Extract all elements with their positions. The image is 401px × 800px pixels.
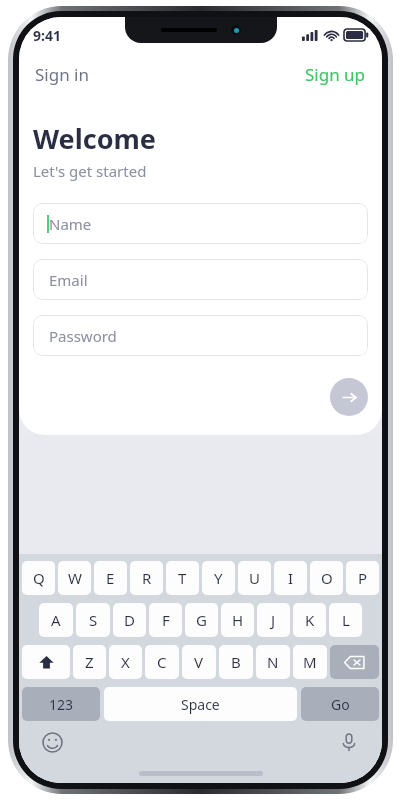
button[interactable]: P <box>346 561 379 595</box>
button[interactable]: F <box>149 603 182 637</box>
staticText: Sign up <box>305 63 366 86</box>
button[interactable]: L <box>329 603 362 637</box>
staticText: V <box>194 652 204 672</box>
button[interactable]: V <box>182 645 216 679</box>
staticText: F <box>162 610 170 630</box>
button[interactable]: S <box>76 603 110 637</box>
button[interactable]: Go <box>301 687 379 721</box>
staticText: Email <box>49 270 88 290</box>
button[interactable]: 123 <box>22 687 100 721</box>
button[interactable]: Password <box>33 315 368 356</box>
staticText: N <box>267 652 279 672</box>
staticText: Let's get started <box>33 161 147 181</box>
staticText: Y <box>214 568 223 588</box>
staticText: C <box>157 652 167 672</box>
button[interactable]: R <box>130 561 163 595</box>
staticText: G <box>196 610 207 630</box>
button[interactable]: M <box>293 645 327 679</box>
staticText: X <box>121 652 130 672</box>
staticText: 9:41 <box>33 26 61 45</box>
button[interactable]: Backspace <box>330 645 379 679</box>
staticText: J <box>271 610 276 630</box>
staticText: Name <box>49 214 92 234</box>
button[interactable]: B <box>219 645 253 679</box>
staticText: S <box>89 610 98 630</box>
staticText: Space <box>181 695 220 714</box>
staticText: Password <box>49 326 117 346</box>
button[interactable]: Continue <box>330 378 368 416</box>
staticText: Q <box>33 568 45 588</box>
staticText: Go <box>331 695 350 714</box>
staticText: Z <box>85 652 94 672</box>
staticText: 123 <box>49 695 74 714</box>
staticText: L <box>342 610 350 630</box>
button[interactable]: K <box>293 603 326 637</box>
button[interactable]: Sign in <box>33 57 91 92</box>
button[interactable]: D <box>113 603 146 637</box>
button[interactable]: I <box>274 561 307 595</box>
button[interactable]: Sign up <box>303 57 368 92</box>
button[interactable]: G <box>185 603 218 637</box>
staticText: W <box>68 568 82 588</box>
staticText: Welcome <box>33 120 156 157</box>
staticText: H <box>232 610 244 630</box>
button[interactable]: Z <box>73 645 106 679</box>
button[interactable]: E <box>94 561 127 595</box>
staticText: B <box>231 652 241 672</box>
button[interactable]: X <box>109 645 142 679</box>
button[interactable]: Q <box>22 561 55 595</box>
staticText: R <box>142 568 152 588</box>
button[interactable]: N <box>256 645 290 679</box>
staticText: O <box>321 568 333 588</box>
button[interactable]: U <box>238 561 271 595</box>
button[interactable]: Y <box>202 561 235 595</box>
button[interactable]: W <box>58 561 91 595</box>
staticText: U <box>249 568 260 588</box>
button[interactable]: Voice input <box>334 727 364 757</box>
button[interactable]: Space <box>104 687 297 721</box>
staticText: A <box>51 610 61 630</box>
staticText: I <box>288 568 294 588</box>
staticText: D <box>124 610 135 630</box>
staticText: Sign in <box>35 63 89 86</box>
button[interactable]: J <box>257 603 290 637</box>
button[interactable]: A <box>39 603 73 637</box>
staticText: E <box>106 568 115 588</box>
button[interactable]: Email <box>33 259 368 300</box>
button[interactable]: Name <box>33 203 368 244</box>
staticText: T <box>178 568 187 588</box>
button[interactable]: O <box>310 561 343 595</box>
button[interactable]: H <box>221 603 254 637</box>
staticText: M <box>303 652 317 672</box>
button[interactable]: T <box>166 561 199 595</box>
staticText: K <box>305 610 315 630</box>
staticText: P <box>358 568 368 588</box>
button[interactable]: Emoji <box>37 727 67 757</box>
button[interactable]: Shift <box>22 645 70 679</box>
button[interactable]: C <box>145 645 179 679</box>
